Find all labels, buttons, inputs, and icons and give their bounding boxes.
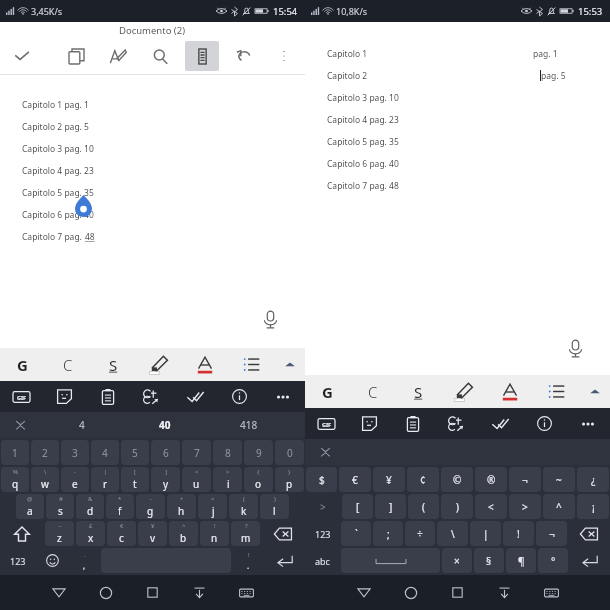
button[interactable]: !	[233, 548, 263, 573]
button[interactable]: ¬	[536, 521, 567, 546]
button[interactable]: Highlight	[441, 375, 487, 408]
button[interactable]: Recents	[434, 575, 481, 610]
button[interactable]: @	[16, 494, 44, 519]
button[interactable]: Back	[35, 575, 82, 610]
button[interactable]: 2	[31, 440, 59, 465]
button[interactable]: Voice input	[554, 327, 596, 369]
button[interactable]: ^	[543, 494, 575, 519]
button[interactable]: More options	[267, 41, 301, 71]
button[interactable]: Emoji	[37, 548, 67, 573]
button[interactable]: 5	[121, 440, 149, 465]
button[interactable]: Bulleted list	[533, 375, 579, 408]
button[interactable]: Search	[143, 41, 177, 71]
button[interactable]: ¢	[407, 467, 439, 492]
button[interactable]: Shift	[1, 521, 43, 546]
button[interactable]: €	[107, 521, 136, 546]
button[interactable]: £	[76, 521, 105, 546]
button[interactable]: Switch keyboard	[223, 575, 270, 610]
button[interactable]: 0	[275, 440, 304, 465]
button[interactable]: *	[106, 494, 134, 519]
button[interactable]: G	[305, 375, 350, 408]
button[interactable]: Copy	[59, 41, 93, 71]
button[interactable]: 4	[40, 412, 123, 438]
button[interactable]: 123	[306, 521, 339, 546]
button[interactable]: ;	[373, 521, 403, 546]
button[interactable]: )	[441, 494, 473, 519]
button[interactable]: >	[306, 494, 340, 519]
button[interactable]: ×	[442, 548, 472, 573]
button[interactable]: >	[509, 494, 541, 519]
button[interactable]: Enter	[570, 548, 609, 573]
button[interactable]: ~	[45, 521, 74, 546]
button[interactable]: Stickers	[43, 381, 86, 412]
button[interactable]: Info	[217, 381, 261, 412]
button[interactable]: >	[213, 467, 242, 492]
button[interactable]: GIF	[305, 408, 348, 439]
button[interactable]: Bulleted list	[228, 348, 274, 381]
button[interactable]: GIF	[0, 381, 43, 412]
button[interactable]: Backspace	[262, 521, 304, 546]
button[interactable]: 1	[1, 440, 29, 465]
button[interactable]: )	[260, 494, 289, 519]
button[interactable]: Spell check	[478, 408, 522, 439]
button[interactable]: `	[341, 521, 371, 546]
button[interactable]: #	[46, 494, 74, 519]
button[interactable]: %	[1, 467, 29, 492]
button[interactable]: }	[275, 467, 304, 492]
button[interactable]: °	[538, 548, 568, 573]
button[interactable]: More	[261, 381, 305, 412]
button[interactable]: 8	[213, 440, 242, 465]
button[interactable]: ¶	[506, 548, 536, 573]
button[interactable]: \	[437, 521, 468, 546]
button[interactable]: Back	[340, 575, 387, 610]
button[interactable]: Hide keyboard	[176, 575, 223, 610]
button[interactable]: ?	[231, 521, 260, 546]
button[interactable]: €	[339, 467, 371, 492]
button[interactable]: Collapse suggestions	[0, 412, 40, 438]
button[interactable]: Recents	[129, 575, 176, 610]
button[interactable]: S	[90, 348, 136, 381]
button[interactable]: 4	[91, 440, 119, 465]
button[interactable]: Enter	[265, 548, 304, 573]
button[interactable]: C	[45, 348, 90, 381]
button[interactable]: Translate	[434, 408, 478, 439]
button[interactable]: 40	[123, 412, 207, 438]
button[interactable]: Undo	[227, 41, 261, 71]
button[interactable]: Font color	[182, 348, 228, 381]
button[interactable]: \	[31, 467, 59, 492]
button[interactable]: G	[0, 348, 45, 381]
button[interactable]: ÷	[405, 521, 435, 546]
button[interactable]: Info	[522, 408, 566, 439]
button[interactable]: ¥	[138, 521, 167, 546]
button[interactable]: ¡	[577, 494, 609, 519]
button[interactable]: $	[306, 467, 337, 492]
button[interactable]: Spell check	[173, 381, 217, 412]
button[interactable]: More	[566, 408, 610, 439]
button[interactable]: Font color	[487, 375, 533, 408]
button[interactable]: !	[200, 521, 229, 546]
button[interactable]: [	[121, 467, 149, 492]
button[interactable]: 6	[151, 440, 180, 465]
button[interactable]: C	[350, 375, 395, 408]
button[interactable]: 418	[207, 412, 291, 438]
button[interactable]: ]	[151, 467, 180, 492]
button[interactable]: ¥	[373, 467, 405, 492]
button[interactable]: Voice input	[249, 298, 291, 340]
button[interactable]: (	[408, 494, 439, 519]
button[interactable]: +	[167, 494, 196, 519]
button[interactable]: Stickers	[348, 408, 391, 439]
button[interactable]: Hide keyboard	[481, 575, 528, 610]
button[interactable]: Collapse	[579, 375, 610, 408]
button[interactable]: ~	[543, 467, 575, 492]
button[interactable]: abc	[306, 548, 339, 573]
button[interactable]: 7	[182, 440, 211, 465]
button[interactable]: -	[61, 467, 89, 492]
button[interactable]: -	[136, 494, 165, 519]
button[interactable]: =	[198, 494, 227, 519]
button[interactable]: Backspace	[569, 521, 609, 546]
button[interactable]: Clipboard	[86, 381, 129, 412]
button[interactable]: §	[474, 548, 504, 573]
button[interactable]: Home	[387, 575, 434, 610]
button[interactable]: |	[91, 467, 119, 492]
